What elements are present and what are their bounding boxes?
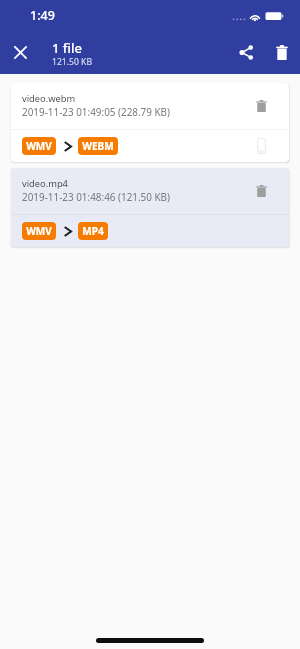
button[interactable]: Remove file: [244, 89, 278, 123]
staticText: video.webm: [22, 92, 76, 105]
staticText: 2019-11-23 01:48:46 (121.50 KB): [22, 190, 171, 203]
button[interactable]: Delete: [270, 40, 294, 64]
button[interactable]: WMV: [22, 222, 56, 240]
staticText: WMV: [26, 139, 52, 153]
staticText: 121.50 KB: [52, 56, 93, 68]
button[interactable]: Share: [234, 40, 258, 64]
button[interactable]: video.mp4: [11, 168, 289, 247]
button[interactable]: MP4: [78, 222, 108, 240]
button[interactable]: WEBM: [78, 137, 118, 155]
button[interactable]: WMV: [22, 137, 56, 155]
staticText: WEBM: [82, 139, 114, 153]
button[interactable]: Close: [9, 41, 32, 64]
button[interactable]: Remove file: [244, 174, 278, 208]
button[interactable]: video.webm: [11, 83, 289, 162]
staticText: 1 file: [52, 39, 82, 57]
staticText: video.mp4: [22, 177, 68, 190]
button[interactable]: Save to device: [244, 130, 278, 162]
staticText: WMV: [26, 224, 52, 238]
staticText: 2019-11-23 01:49:05 (228.79 KB): [22, 105, 171, 118]
staticText: 1:49: [30, 7, 55, 24]
staticText: MP4: [82, 224, 104, 238]
